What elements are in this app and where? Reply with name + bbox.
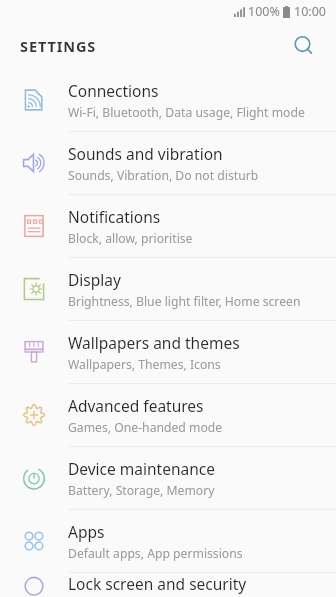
button[interactable]: Lock screen and security — [0, 573, 336, 597]
staticText: Display — [68, 269, 121, 290]
staticText: Connections — [68, 80, 159, 101]
staticText: Sounds and vibration — [68, 143, 223, 164]
button[interactable]: Wallpapers and themes — [0, 321, 336, 384]
staticText: Block, allow, prioritise — [68, 230, 193, 247]
button[interactable]: Advanced features — [0, 384, 336, 447]
staticText: 10:00 — [294, 3, 326, 20]
staticText: SETTINGS — [20, 36, 97, 56]
staticText: Sounds, Vibration, Do not disturb — [68, 167, 259, 184]
button[interactable]: Notifications — [0, 195, 336, 258]
staticText: Default apps, App permissions — [68, 545, 243, 562]
staticText: Notifications — [68, 206, 161, 227]
staticText: Battery, Storage, Memory — [68, 482, 215, 499]
button[interactable]: Sounds and vibration — [0, 132, 336, 195]
button[interactable]: Display — [0, 258, 336, 321]
staticText: Apps — [68, 521, 105, 542]
button[interactable]: Search — [284, 26, 324, 66]
button[interactable]: Device maintenance — [0, 447, 336, 510]
staticText: Wallpapers, Themes, Icons — [68, 356, 221, 373]
button[interactable]: Connections — [0, 69, 336, 132]
staticText: Games, One-handed mode — [68, 419, 223, 436]
button[interactable]: Apps — [0, 510, 336, 573]
staticText: Advanced features — [68, 395, 204, 416]
staticText: Lock screen and security — [68, 573, 247, 594]
staticText: Wallpapers and themes — [68, 332, 240, 353]
staticText: Wi-Fi, Bluetooth, Data usage, Flight mod… — [68, 104, 305, 121]
staticText: Brightness, Blue light filter, Home scre… — [68, 293, 301, 310]
staticText: 100% — [248, 3, 280, 20]
staticText: Device maintenance — [68, 458, 215, 479]
